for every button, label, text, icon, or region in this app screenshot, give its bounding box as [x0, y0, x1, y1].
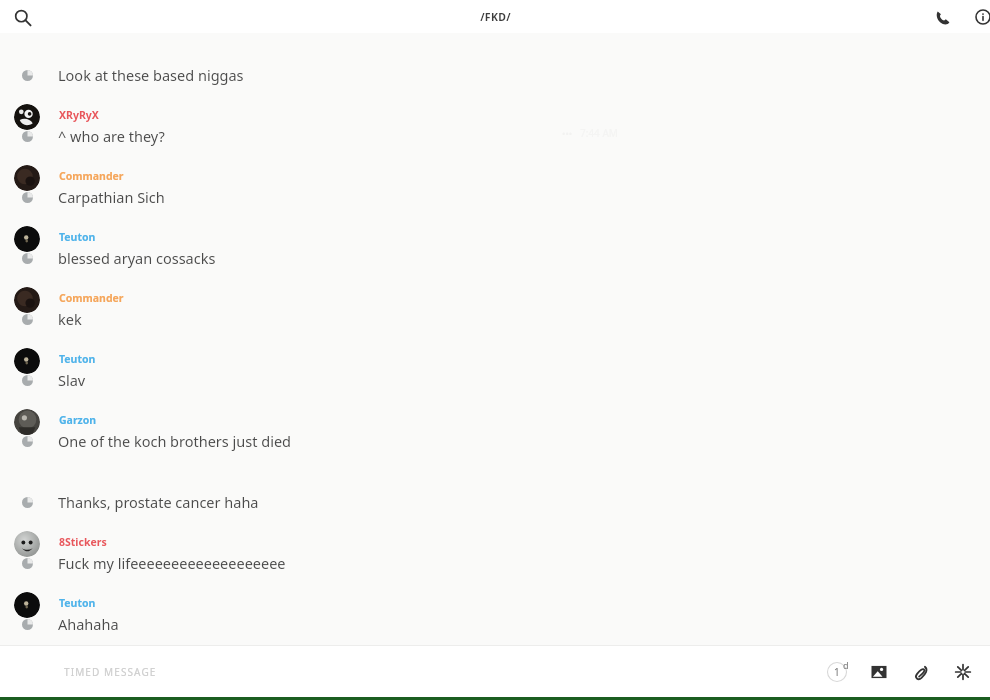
staticText: /FKD/ [480, 10, 511, 24]
button[interactable]: Teuton [0, 344, 990, 405]
button[interactable]: Teuton [0, 222, 990, 283]
staticText: Commander [59, 291, 124, 305]
staticText: 8Stickers [59, 535, 107, 549]
staticText: Teuton [59, 352, 96, 366]
button[interactable]: Call [926, 1, 958, 33]
button[interactable]: Search [6, 1, 38, 33]
staticText: ^ who are they? [58, 126, 165, 146]
button[interactable]: Commander [0, 283, 990, 344]
button[interactable]: Attach file [900, 651, 942, 693]
staticText: Teuton [59, 230, 96, 244]
staticText: Thanks, prostate cancer haha [58, 492, 259, 512]
button[interactable]: Photo [858, 651, 900, 693]
staticText: kek [58, 309, 82, 329]
staticText: TIMED MESSAGE [64, 665, 157, 679]
button[interactable]: Message timer 1 day [816, 651, 858, 693]
staticText: Fuck my lifeeeeeeeeeeeeeeeeeee [58, 553, 286, 573]
button[interactable]: Effects [942, 651, 984, 693]
staticText: Commander [59, 169, 124, 183]
button[interactable]: 8Stickers [0, 527, 990, 588]
button[interactable]: Thanks, prostate cancer haha [0, 466, 990, 527]
button[interactable]: Info [958, 1, 990, 33]
button[interactable]: Garzon [0, 405, 990, 466]
staticText: XRyRyX [59, 108, 99, 122]
staticText: Carpathian Sich [58, 187, 165, 207]
staticText: Garzon [59, 413, 97, 427]
staticText: blessed aryan cossacks [58, 248, 216, 268]
staticText: Look at these based niggas [58, 65, 244, 85]
staticText: Slav [58, 370, 86, 390]
button[interactable]: XRyRyX [0, 100, 990, 161]
staticText: Teuton [59, 596, 96, 610]
button[interactable]: Look at these based niggas [0, 39, 990, 100]
staticText: d [843, 659, 849, 671]
staticText: Ahahaha [58, 614, 119, 634]
staticText: One of the koch brothers just died [58, 431, 291, 451]
button[interactable]: Commander [0, 161, 990, 222]
button[interactable]: Teuton [0, 588, 990, 645]
staticText: 1 [834, 665, 840, 679]
